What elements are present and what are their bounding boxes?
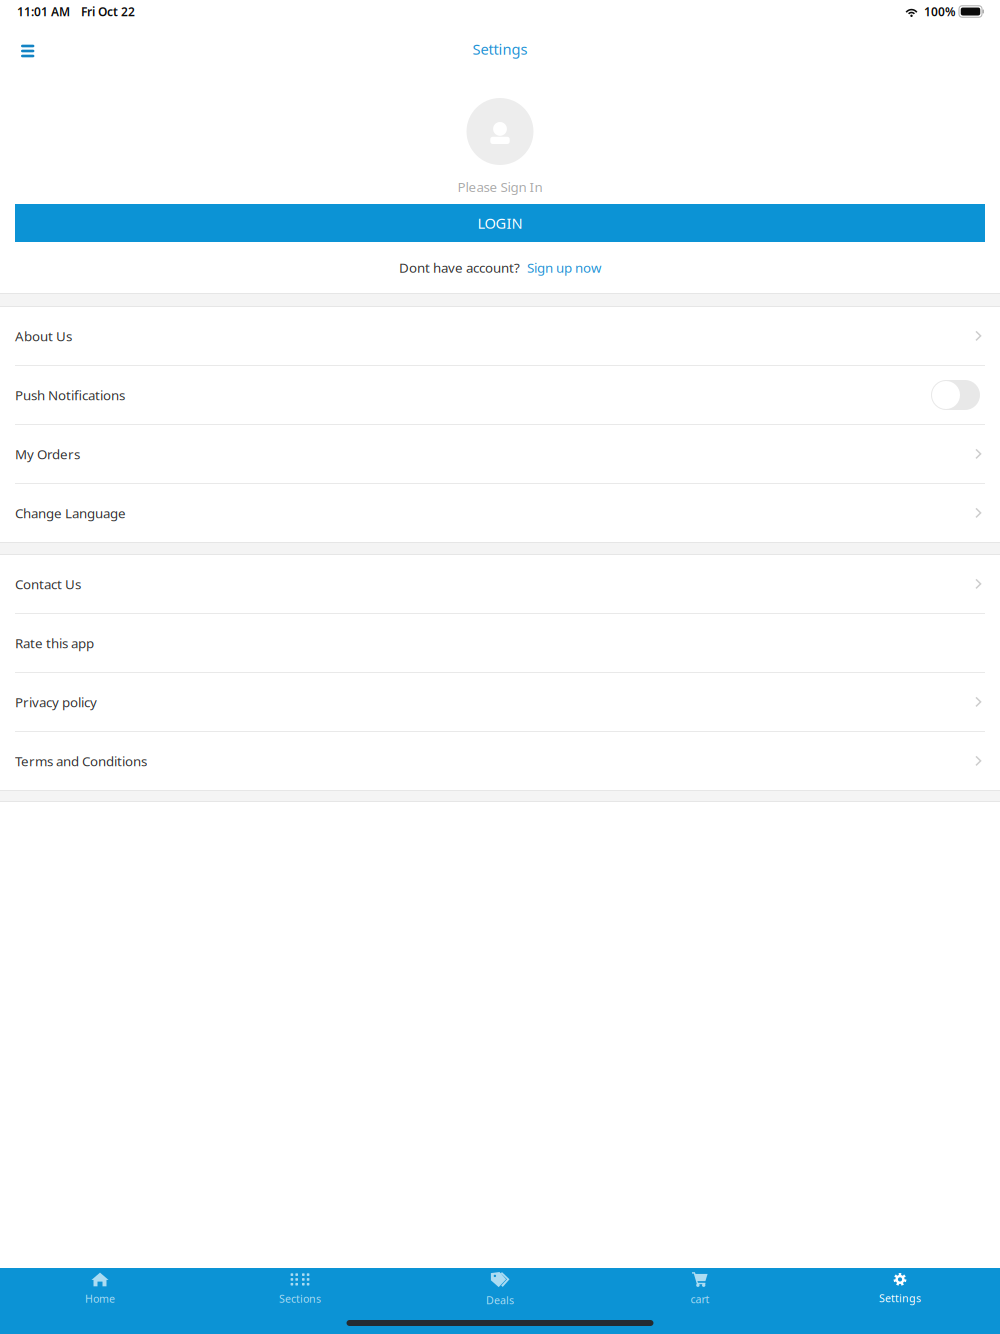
staticText: Home	[85, 1291, 115, 1306]
staticText: Fri Oct 22	[81, 3, 135, 19]
button[interactable]: Sign up now	[527, 259, 601, 276]
staticText: Privacy policy	[15, 693, 97, 711]
staticText: cart	[690, 1292, 709, 1306]
button[interactable]: Contact Us	[0, 555, 1000, 613]
button[interactable]: My Orders	[0, 425, 1000, 483]
button[interactable]: Home	[0, 1268, 200, 1310]
button[interactable]: Menu	[0, 35, 48, 63]
staticText: Deals	[486, 1293, 514, 1307]
staticText: Settings	[472, 39, 527, 59]
staticText: Sign up now	[527, 259, 601, 276]
button[interactable]: Change Language	[0, 484, 1000, 542]
staticText: Sections	[279, 1291, 321, 1306]
button[interactable]: Settings	[800, 1268, 1000, 1310]
button[interactable]: cart	[600, 1268, 800, 1310]
button[interactable]: Push Notifications	[0, 366, 1000, 424]
staticText: Change Language	[15, 504, 126, 522]
staticText: 100%	[924, 3, 956, 19]
staticText: Terms and Conditions	[15, 752, 147, 770]
staticText: Rate this app	[15, 634, 94, 652]
button[interactable]: Sections	[200, 1268, 400, 1310]
staticText: Dont have account?	[399, 259, 520, 276]
staticText: Please Sign In	[457, 178, 542, 196]
button[interactable]: Privacy policy	[0, 673, 1000, 731]
button[interactable]: Rate this app	[0, 614, 1000, 672]
staticText: Contact Us	[15, 575, 81, 593]
staticText: My Orders	[15, 445, 80, 463]
staticText: LOGIN	[477, 213, 522, 233]
staticText: Push Notifications	[15, 386, 125, 404]
staticText: 11:01 AM	[17, 3, 70, 19]
button[interactable]: LOGIN	[15, 204, 985, 242]
button[interactable]: About Us	[0, 307, 1000, 365]
staticText: About Us	[15, 327, 72, 345]
button[interactable]: Terms and Conditions	[0, 732, 1000, 790]
staticText: Settings	[879, 1291, 921, 1305]
button[interactable]: Deals	[400, 1268, 600, 1310]
